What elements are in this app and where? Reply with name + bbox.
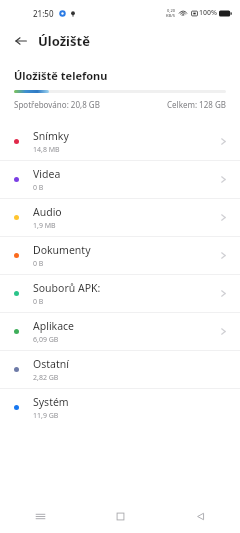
button[interactable]: Systém (0, 389, 240, 426)
staticText: 0 B (33, 183, 44, 193)
staticText: Dokumenty (33, 243, 91, 257)
staticText: Úložiště (38, 32, 90, 50)
staticText: 0 B (33, 297, 44, 307)
staticText: Ostatní (33, 357, 69, 371)
staticText: 100% (199, 8, 217, 18)
staticText: 2,82 GB (33, 373, 59, 383)
staticText: Snímky (33, 129, 69, 143)
staticText: Videa (33, 167, 61, 181)
staticText: Systém (33, 395, 69, 409)
button[interactable]: Aplikace (0, 313, 240, 350)
staticText: 0 B (33, 259, 44, 269)
button[interactable]: Back (160, 499, 240, 533)
button[interactable]: Back (10, 30, 32, 52)
button[interactable]: Recent apps (0, 499, 80, 533)
staticText: 1,9 MB (33, 221, 56, 231)
button[interactable]: Audio (0, 199, 240, 236)
button[interactable]: Dokumenty (0, 237, 240, 274)
staticText: Aplikace (33, 319, 75, 333)
button[interactable]: Videa (0, 161, 240, 198)
staticText: KB/S (166, 13, 175, 18)
button[interactable]: Home (80, 499, 160, 533)
staticText: 0,20 (167, 8, 175, 13)
staticText: Audio (33, 205, 62, 219)
button[interactable]: Ostatní (0, 351, 240, 388)
staticText: 21:50 (33, 8, 54, 19)
staticText: Celkem: 128 GB (167, 99, 226, 110)
staticText: 6,09 GB (33, 335, 59, 345)
staticText: 14,8 MB (33, 145, 60, 155)
staticText: Spotřebováno: 20,8 GB (14, 99, 100, 110)
staticText: Úložiště telefonu (14, 68, 108, 83)
staticText: Souborů APK: (33, 281, 101, 295)
button[interactable]: Souborů APK: (0, 275, 240, 312)
staticText: 11,9 GB (33, 411, 59, 421)
button[interactable]: Snímky (0, 123, 240, 160)
